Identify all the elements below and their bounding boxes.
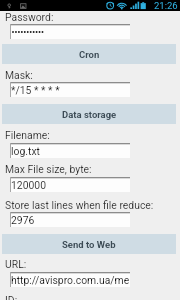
button[interactable]: Cron xyxy=(2,44,176,64)
staticText: 21:26 xyxy=(154,0,178,11)
staticText: Send to Web xyxy=(62,239,116,250)
staticText: Filename: xyxy=(5,129,50,141)
staticText: Store last lines when file reduce: xyxy=(5,199,154,211)
button[interactable]: http://avispro.com.ua/me xyxy=(10,272,130,287)
staticText: 2976 xyxy=(11,214,35,226)
button[interactable]: Send to Web xyxy=(2,234,176,254)
button[interactable]: 2976 xyxy=(10,212,130,227)
staticText: */15 * * * * xyxy=(11,84,60,96)
staticText: 120000 xyxy=(11,179,47,191)
staticText: Password: xyxy=(5,11,54,23)
staticText: ID: xyxy=(5,294,18,300)
staticText: log.txt xyxy=(11,145,40,157)
staticText: Max File size, byte: xyxy=(5,163,92,175)
button[interactable]: 120000 xyxy=(10,177,130,192)
button[interactable]: */15 * * * * xyxy=(10,82,130,97)
button[interactable]: Data storage xyxy=(2,104,176,124)
staticText: Data storage xyxy=(62,109,117,120)
button[interactable] xyxy=(10,24,130,39)
other: Status bar xyxy=(0,0,180,11)
staticText: Cron xyxy=(79,49,100,60)
staticText: Mask: xyxy=(5,69,33,81)
button[interactable]: log.txt xyxy=(10,143,130,158)
staticText: URL: xyxy=(5,258,27,270)
staticText: http://avispro.com.ua/me xyxy=(11,274,130,286)
